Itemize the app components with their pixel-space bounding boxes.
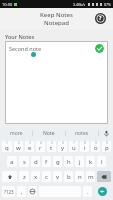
staticText: 2 [18,141,20,145]
button[interactable]: f [42,156,51,167]
staticText: c [45,173,48,181]
staticText: z [23,173,26,181]
staticText: m [88,173,94,181]
button[interactable]: . [83,186,92,197]
button[interactable]: k [86,156,95,167]
button[interactable]: c [42,171,51,182]
staticText: 3 [29,141,31,145]
staticText: q [5,144,9,152]
staticText: Notepad [44,19,69,27]
staticText: f [45,158,48,166]
button[interactable]: ?123 [2,186,15,197]
staticText: ? [99,15,102,22]
staticText: 9 [95,141,97,145]
staticText: t [50,144,53,152]
button[interactable]: 4 [36,141,45,152]
button[interactable]: n [75,171,84,182]
button[interactable]: x [31,171,40,182]
button[interactable]: 5 [47,141,56,152]
button[interactable]: 8 [80,141,89,152]
staticText: notes [75,130,89,137]
staticText: 4 [40,141,42,145]
staticText: , [21,188,23,196]
staticText: v [56,173,60,181]
staticText: i [84,144,86,152]
button[interactable]: s [19,156,29,167]
button[interactable]: h [64,156,73,167]
staticText: 1 [6,141,8,145]
button[interactable]: 2 [14,141,23,152]
staticText: 87% [104,2,111,7]
staticText: 6 [62,141,64,145]
staticText: n [78,173,82,181]
staticText: b [67,173,71,181]
staticText: 8 [84,141,86,145]
staticText: ?123 [4,189,14,195]
button[interactable]: v [53,171,62,182]
button[interactable]: 0 [102,141,111,152]
button[interactable]: 6 [58,141,67,152]
staticText: Second note [9,45,42,52]
button[interactable]: d [31,156,40,167]
staticText: 5 [51,141,53,145]
button[interactable]: g [53,156,62,167]
staticText: h [67,158,71,166]
button[interactable]: notes [66,128,98,139]
staticText: Note [43,130,55,137]
staticText: . [87,188,89,196]
staticText: g [56,158,60,166]
staticText: l [101,158,103,166]
button[interactable]: more [0,128,32,139]
staticText: p [105,144,109,152]
button[interactable]: 1 [2,141,12,152]
button[interactable]: j [75,156,84,167]
staticText: 7 [73,141,75,145]
button[interactable]: Save note [95,44,104,53]
button[interactable]: Second note [5,41,108,124]
button[interactable]: Voice input [99,128,113,139]
button[interactable]: Note [33,128,65,139]
button[interactable]: 3 [25,141,34,152]
staticText: x [34,173,38,181]
button[interactable]: Shift [2,171,17,182]
staticText: u [72,144,76,152]
staticText: d [34,158,38,166]
button[interactable]: 7 [69,141,78,152]
staticText: y [61,144,65,152]
staticText: k [89,158,93,166]
button[interactable]: 9 [91,141,100,152]
button[interactable]: z [19,171,29,182]
button[interactable]: a [7,156,17,167]
button[interactable]: Enter [94,186,111,197]
staticText: 0 [106,141,108,145]
staticText: more [10,130,23,137]
staticText: s [23,158,26,166]
button[interactable]: Emoji [28,186,37,197]
staticText: e [28,144,32,152]
button[interactable]: Help [94,12,107,25]
button[interactable]: l [97,156,106,167]
staticText: j [79,158,81,166]
staticText: o [94,144,98,152]
staticText: r [39,144,42,152]
button[interactable]: , [17,186,26,197]
staticText: Your Notes [5,33,35,40]
staticText: Keep Notes [40,11,73,19]
button[interactable]: b [64,171,73,182]
button[interactable]: Backspace [97,171,111,182]
staticText: w [16,144,21,152]
staticText: 3.4Kb/s [73,2,86,7]
staticText: a [10,158,14,166]
staticText: 10:00 [2,2,13,7]
button[interactable]: m [86,171,95,182]
